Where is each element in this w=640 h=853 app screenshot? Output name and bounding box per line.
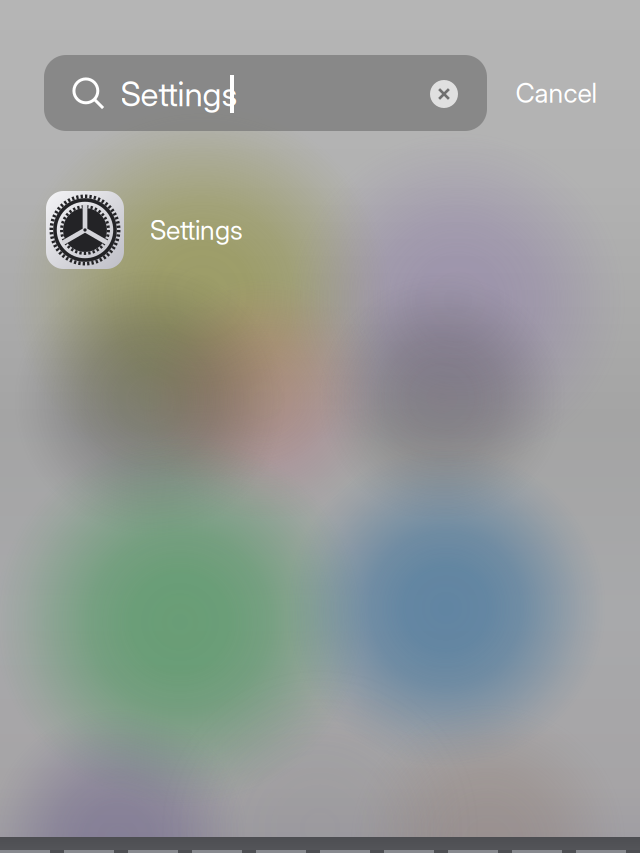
button[interactable]: Clear text [414,64,474,124]
staticText: Settings [150,214,243,246]
staticText: Cancel [515,77,596,109]
button[interactable]: Settings [0,181,640,279]
button[interactable]: Cancel [496,55,616,131]
staticText: Settings [120,74,237,114]
